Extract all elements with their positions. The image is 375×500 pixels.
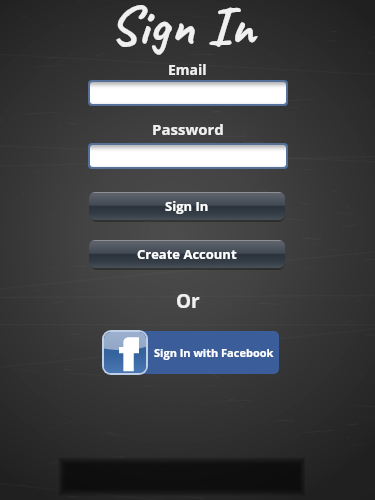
other: Sign in with Facebook — [104, 332, 146, 373]
button[interactable]: Create Account — [89, 240, 285, 268]
button[interactable]: Sign In — [89, 192, 285, 220]
staticText: Create Account — [137, 245, 237, 263]
staticText: Email — [168, 60, 207, 79]
staticText: Or — [176, 288, 200, 314]
staticText: Sign In — [165, 197, 209, 215]
button[interactable] — [106, 331, 279, 374]
button[interactable] — [90, 145, 286, 167]
staticText: Sign In with Facebook — [154, 345, 274, 360]
staticText: Password — [152, 119, 224, 139]
button[interactable] — [90, 82, 286, 104]
staticText: Sign In — [109, 0, 255, 60]
